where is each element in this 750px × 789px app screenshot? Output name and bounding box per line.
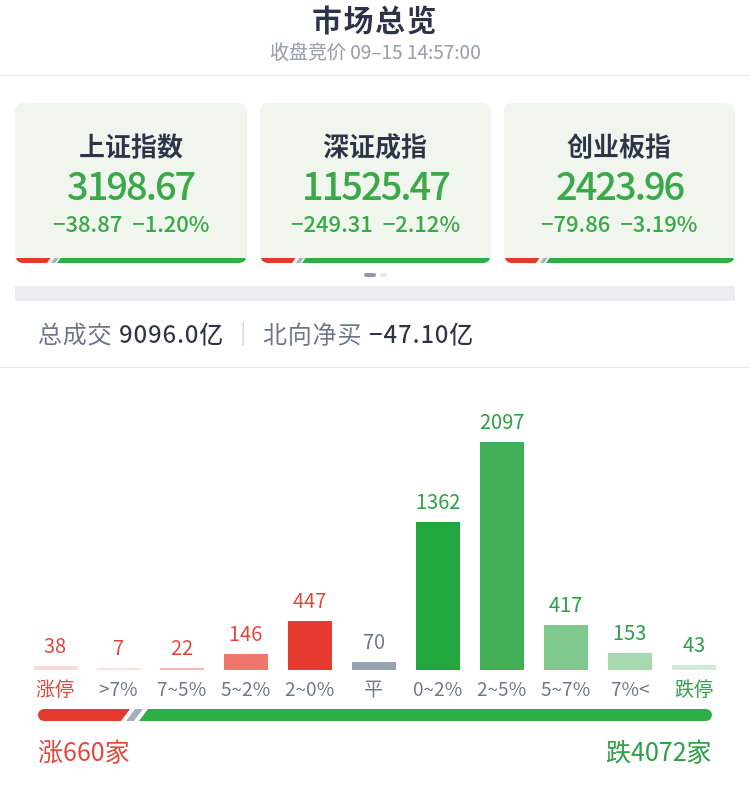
staticText: 43	[683, 629, 706, 658]
staticText: >7%	[99, 674, 138, 702]
button[interactable]: 创业板指	[504, 103, 735, 263]
staticText: 平	[364, 674, 384, 702]
staticText: 146	[229, 618, 263, 647]
staticText: 上证指数	[79, 126, 184, 156]
staticText: 北向净买	[263, 315, 369, 350]
staticText: 跌停	[675, 674, 714, 702]
button[interactable]: 上证指数	[15, 103, 247, 263]
staticText: 38	[44, 630, 67, 659]
staticText: 7%<	[611, 674, 650, 702]
button[interactable]: 深证成指	[260, 103, 491, 263]
staticText: ｜	[225, 315, 263, 350]
staticText: 涨停	[36, 674, 75, 702]
staticText: 2097	[480, 406, 525, 435]
staticText: 7~5%	[157, 674, 207, 702]
staticText: 417	[549, 589, 583, 618]
button[interactable]: 总成交	[38, 301, 750, 363]
staticText: −79.86 −3.19%	[541, 206, 698, 238]
staticText: 涨660家	[38, 732, 130, 768]
staticText: 7	[113, 632, 125, 661]
staticText: 创业板指	[567, 126, 672, 156]
staticText: 447	[293, 585, 327, 614]
staticText: 11525.47	[302, 156, 449, 183]
staticText: 收盘竞价 09–15 14:57:00	[270, 37, 481, 64]
staticText: 2~0%	[285, 674, 335, 702]
staticText: −249.31 −2.12%	[291, 206, 461, 238]
staticText: 深证成指	[323, 126, 428, 156]
staticText: 0~2%	[413, 674, 463, 702]
staticText: 1362	[416, 486, 461, 515]
staticText: 跌4072家	[606, 732, 712, 768]
staticText: 市场总览	[312, 0, 438, 23]
staticText: 3198.67	[67, 156, 195, 183]
staticText: −47.10亿	[369, 315, 475, 350]
staticText: 2423.96	[556, 156, 684, 183]
staticText: 5~2%	[221, 674, 271, 702]
staticText: −38.87 −1.20%	[53, 206, 210, 238]
staticText: 5~7%	[541, 674, 591, 702]
staticText: 153	[613, 617, 647, 646]
staticText: 总成交	[38, 315, 119, 350]
staticText: 9096.0亿	[119, 315, 225, 350]
staticText: 22	[171, 632, 194, 661]
staticText: 70	[363, 626, 386, 655]
staticText: 2~5%	[477, 674, 527, 702]
